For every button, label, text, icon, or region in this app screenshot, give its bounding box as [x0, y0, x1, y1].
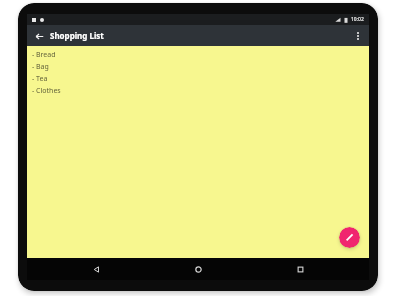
button[interactable]: Recent apps [291, 260, 309, 278]
staticText: - Tea [32, 74, 48, 84]
button[interactable]: Edit note [339, 227, 360, 248]
button[interactable]: More options [350, 28, 366, 44]
button[interactable]: Back [87, 260, 105, 278]
button[interactable]: - Bread [32, 49, 56, 61]
staticText: - Bread [32, 50, 56, 60]
staticText: Shopping List [50, 30, 104, 41]
staticText: 10:02 [351, 16, 364, 23]
button[interactable]: Home [189, 260, 207, 278]
button[interactable]: Back [31, 28, 47, 44]
button[interactable]: - Bag [32, 61, 49, 73]
staticText: - Clothes [32, 86, 61, 96]
button[interactable]: - Clothes [32, 85, 61, 97]
staticText: - Bag [32, 62, 49, 72]
button[interactable]: - Tea [32, 73, 48, 85]
